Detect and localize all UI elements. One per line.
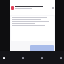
button[interactable] bbox=[11, 16, 54, 41]
button[interactable]: Settings bbox=[59, 56, 62, 60]
button[interactable]: Profile bbox=[11, 6, 14, 10]
button[interactable]: Add bbox=[30, 45, 54, 60]
button[interactable]: Search bbox=[21, 56, 24, 60]
button[interactable]: Home bbox=[2, 56, 5, 60]
button[interactable]: Library bbox=[40, 56, 43, 60]
